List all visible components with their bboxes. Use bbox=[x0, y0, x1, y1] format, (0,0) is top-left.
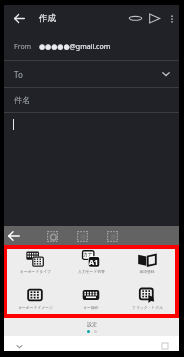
button[interactable]: Hide keyboard bbox=[4, 226, 23, 245]
staticText: A1 bbox=[89, 257, 99, 267]
button[interactable]: 件名 bbox=[4, 88, 179, 112]
button[interactable]: Attach file bbox=[127, 10, 144, 27]
button[interactable]: Clipboard item bbox=[103, 227, 121, 245]
staticText: 件名 bbox=[14, 95, 30, 105]
button[interactable]: Recent apps bbox=[159, 341, 171, 351]
button[interactable]: Back bbox=[7, 6, 32, 31]
staticText: キーボードタイプ bbox=[20, 269, 51, 274]
staticText: 設定 bbox=[87, 321, 97, 327]
button[interactable]: キー操作 bbox=[63, 281, 119, 314]
staticText: To bbox=[14, 69, 23, 80]
button[interactable]: Clipboard item bbox=[73, 227, 91, 245]
button[interactable]: Send bbox=[146, 10, 163, 27]
button[interactable]: キーボードイメージ bbox=[7, 281, 63, 314]
button[interactable] bbox=[4, 113, 179, 226]
button[interactable]: More options bbox=[164, 11, 179, 26]
staticText: キーボードイメージ bbox=[18, 305, 53, 310]
button[interactable]: フリック・トグル bbox=[119, 281, 175, 314]
staticText: カナ bbox=[83, 251, 93, 257]
button[interactable]: 単語登録 bbox=[119, 249, 175, 281]
button[interactable]: To bbox=[4, 61, 179, 87]
staticText: 入力モード切替 bbox=[78, 269, 105, 274]
staticText: ●●●●●@gmail.com bbox=[39, 42, 111, 52]
button[interactable]: キーボードタイプ bbox=[7, 249, 63, 281]
button[interactable]: From bbox=[4, 34, 179, 60]
button[interactable]: Clipboard item bbox=[43, 227, 61, 245]
staticText: 単語登録 bbox=[139, 269, 155, 274]
button[interactable]: 設定 bbox=[81, 320, 103, 328]
staticText: From bbox=[14, 42, 32, 52]
staticText: フリック・トグル bbox=[132, 305, 163, 310]
staticText: キー操作 bbox=[83, 305, 99, 310]
staticText: 作成 bbox=[39, 13, 57, 24]
button[interactable]: カナ bbox=[63, 249, 119, 281]
button[interactable]: Back bbox=[13, 341, 25, 351]
